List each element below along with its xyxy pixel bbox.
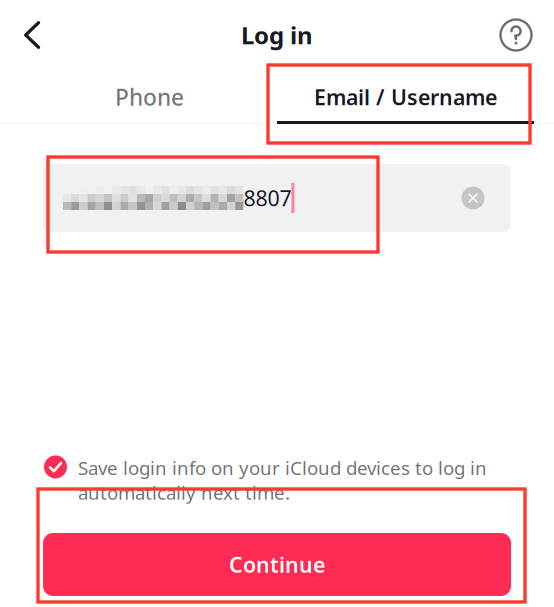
staticText: Phone	[115, 82, 184, 112]
button[interactable]: Help	[492, 11, 540, 59]
button[interactable]: Back	[8, 11, 56, 59]
button[interactable]: Email / Username	[277, 70, 534, 124]
button[interactable]: Clear text	[451, 176, 495, 220]
staticText: 8807	[243, 184, 291, 212]
staticText: Save login info on your iCloud devices t…	[78, 455, 487, 505]
staticText: Continue	[229, 550, 325, 579]
button[interactable]: Phone	[0, 70, 277, 124]
staticText: Log in	[241, 19, 313, 51]
staticText: Email / Username	[314, 83, 497, 111]
button[interactable]: Continue	[43, 533, 511, 596]
button[interactable]: Email or username	[43, 164, 511, 232]
button[interactable]: Save login info on your iCloud devices t…	[0, 455, 554, 505]
